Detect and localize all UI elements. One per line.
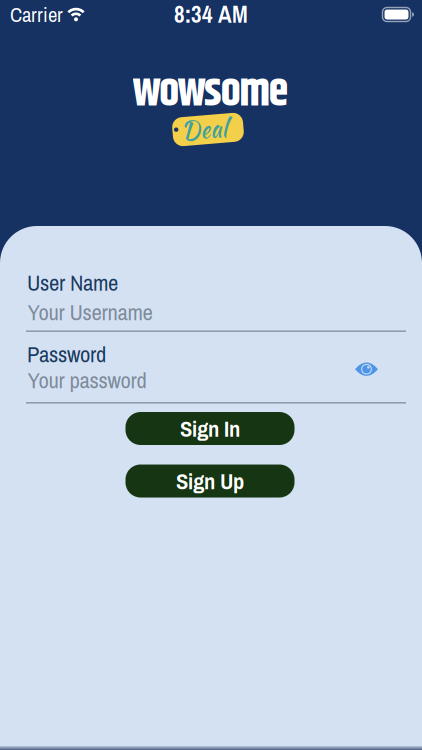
button[interactable]: Sign In [125,412,294,445]
staticText: Carrier [10,1,63,28]
staticText: User Name [27,267,118,298]
staticText: Sign In [180,413,240,444]
staticText: Deal [181,112,227,147]
staticText: wowsome [132,58,288,127]
staticText: 8:34 AM [174,0,248,30]
staticText: Password [27,339,106,369]
staticText: Your Username [27,297,152,327]
staticText: Sign Up [176,466,244,496]
button[interactable]: Sign Up [125,464,294,497]
button[interactable]: Show password [355,363,378,376]
staticText: Your password [27,365,146,395]
textField[interactable]: Your password [27,364,407,396]
textField[interactable]: Your Username [27,296,407,328]
